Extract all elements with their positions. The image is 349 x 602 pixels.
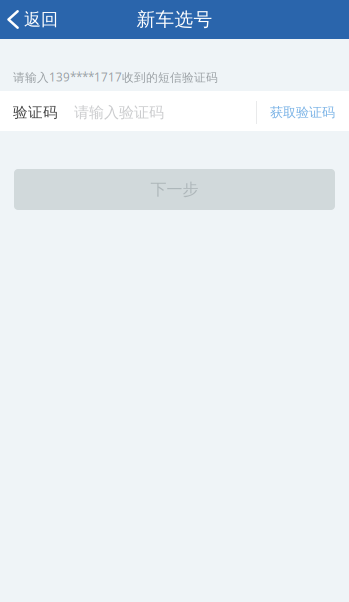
button[interactable]: 验证码 xyxy=(0,92,256,132)
staticText: 返回 xyxy=(24,9,58,30)
staticText: 新车选号 xyxy=(136,8,212,31)
staticText: 请输入验证码 xyxy=(74,103,164,122)
button[interactable]: 获取验证码 xyxy=(257,92,349,132)
staticText: 获取验证码 xyxy=(270,104,335,120)
button[interactable]: 返回 xyxy=(0,0,68,39)
staticText: 验证码 xyxy=(13,104,58,121)
staticText: 下一步 xyxy=(150,180,198,199)
staticText: 请输入139****1717收到的短信验证码 xyxy=(13,69,218,85)
